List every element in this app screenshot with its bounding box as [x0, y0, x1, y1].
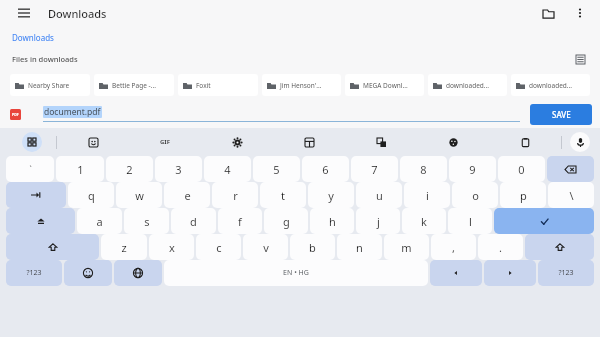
button[interactable]: c — [196, 234, 241, 260]
button[interactable]: New folder — [538, 3, 558, 23]
button[interactable]: ?123 — [538, 260, 594, 286]
staticText: 5 — [273, 162, 280, 177]
button[interactable]: 1 — [56, 156, 104, 182]
staticText: 7 — [371, 162, 378, 177]
button[interactable]: \ — [548, 182, 594, 208]
button[interactable]: 5 — [253, 156, 300, 182]
button[interactable]: 4 — [204, 156, 251, 182]
button[interactable]: 3 — [155, 156, 202, 182]
button[interactable]: EN • HG — [164, 260, 428, 286]
button[interactable]: 7 — [351, 156, 398, 182]
staticText: p — [520, 188, 527, 203]
staticText: a — [96, 214, 103, 229]
button[interactable]: translate — [372, 133, 390, 151]
staticText: Nearby Share — [28, 81, 70, 90]
staticText: o — [472, 188, 479, 203]
button[interactable]: Menu — [14, 3, 34, 23]
staticText: \ — [569, 188, 574, 203]
button[interactable]: v — [243, 234, 288, 260]
button[interactable]: a — [77, 208, 122, 234]
staticText: 9 — [469, 162, 476, 177]
button[interactable]: Shift — [525, 234, 594, 260]
button[interactable]: Caps lock — [6, 208, 75, 234]
staticText: m — [401, 240, 412, 255]
button[interactable]: sticker — [84, 133, 102, 151]
button[interactable]: 9 — [449, 156, 496, 182]
staticText: Downloads — [12, 32, 54, 43]
staticText: r — [233, 188, 238, 203]
button[interactable]: t — [260, 182, 306, 208]
staticText: n — [356, 240, 363, 255]
button[interactable]: MEGA Downl... — [345, 74, 424, 96]
button[interactable]: Jim Henson'... — [262, 74, 341, 96]
button[interactable]: d — [171, 208, 216, 234]
button[interactable]: p — [500, 182, 546, 208]
button[interactable]: Shift — [6, 234, 99, 260]
button[interactable]: Enter — [494, 208, 594, 234]
button[interactable]: gif — [156, 133, 174, 151]
button[interactable]: j — [356, 208, 400, 234]
staticText: 8 — [420, 162, 427, 177]
button[interactable]: s — [124, 208, 169, 234]
button[interactable]: Downloads — [12, 32, 54, 43]
button[interactable]: Emoji — [64, 260, 112, 286]
button[interactable]: Backspace — [547, 156, 594, 182]
button[interactable]: z — [101, 234, 147, 260]
button[interactable]: Voice input — [570, 132, 590, 152]
button[interactable]: k — [402, 208, 446, 234]
staticText: j — [377, 214, 380, 229]
button[interactable]: Tab — [6, 182, 66, 208]
button[interactable]: downloaded... — [511, 74, 590, 96]
staticText: EN • HG — [283, 268, 309, 278]
button[interactable]: Foxit — [178, 74, 258, 96]
button[interactable]: y — [308, 182, 354, 208]
staticText: GIF — [160, 138, 170, 146]
button[interactable]: settings — [228, 133, 246, 151]
button[interactable]: , — [431, 234, 476, 260]
staticText: x — [169, 240, 175, 255]
button[interactable]: SAVE — [530, 104, 592, 125]
button[interactable]: Change language — [114, 260, 162, 286]
button[interactable]: g — [264, 208, 308, 234]
button[interactable]: 6 — [302, 156, 349, 182]
button[interactable]: clipboardgrid — [300, 133, 318, 151]
staticText: z — [121, 240, 127, 255]
button[interactable]: r — [212, 182, 258, 208]
button[interactable]: e — [164, 182, 210, 208]
button[interactable]: . — [478, 234, 523, 260]
button[interactable]: w — [116, 182, 162, 208]
staticText: 2 — [126, 162, 133, 177]
staticText: downloaded... — [529, 81, 573, 90]
button[interactable]: m — [384, 234, 429, 260]
staticText: u — [376, 188, 383, 203]
button[interactable]: downloaded... — [428, 74, 507, 96]
button[interactable]: b — [290, 234, 335, 260]
button[interactable]: palette — [444, 133, 462, 151]
button[interactable]: ` — [6, 156, 54, 182]
button[interactable]: n — [337, 234, 382, 260]
button[interactable]: x — [149, 234, 194, 260]
button[interactable]: Nearby Share — [10, 74, 90, 96]
button[interactable]: Move cursor right — [484, 260, 536, 286]
button[interactable]: h — [310, 208, 354, 234]
button[interactable]: Move cursor left — [430, 260, 482, 286]
button[interactable]: 8 — [400, 156, 447, 182]
button[interactable]: i — [404, 182, 450, 208]
button[interactable]: More options — [570, 3, 590, 23]
button[interactable]: 0 — [498, 156, 545, 182]
button[interactable]: u — [356, 182, 402, 208]
button[interactable]: Bettie Page -... — [94, 74, 174, 96]
button[interactable]: ?123 — [6, 260, 62, 286]
button[interactable]: clipboard — [516, 133, 534, 151]
staticText: i — [426, 188, 429, 203]
button[interactable]: 2 — [106, 156, 153, 182]
button[interactable]: l — [448, 208, 492, 234]
staticText: 4 — [224, 162, 231, 177]
staticText: Downloads — [48, 6, 107, 21]
button[interactable]: f — [218, 208, 262, 234]
button[interactable]: Toolbox — [22, 132, 42, 152]
button[interactable]: o — [452, 182, 498, 208]
button[interactable]: q — [68, 182, 114, 208]
staticText: c — [216, 240, 222, 255]
button[interactable]: View options — [572, 51, 588, 67]
